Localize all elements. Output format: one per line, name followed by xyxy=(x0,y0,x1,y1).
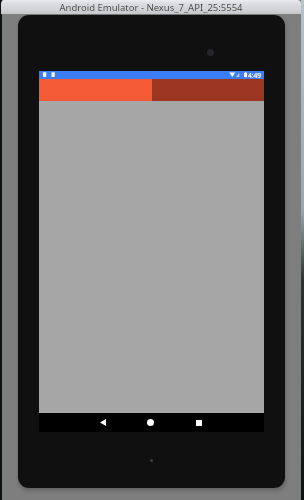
button[interactable]: Home xyxy=(141,413,160,432)
staticText: 4:49 xyxy=(248,71,262,79)
button[interactable]: Back xyxy=(93,413,112,432)
staticText: Android Emulator - Nexus_7_API_25:5554 xyxy=(59,1,243,14)
button[interactable]: Recent apps xyxy=(189,413,208,432)
